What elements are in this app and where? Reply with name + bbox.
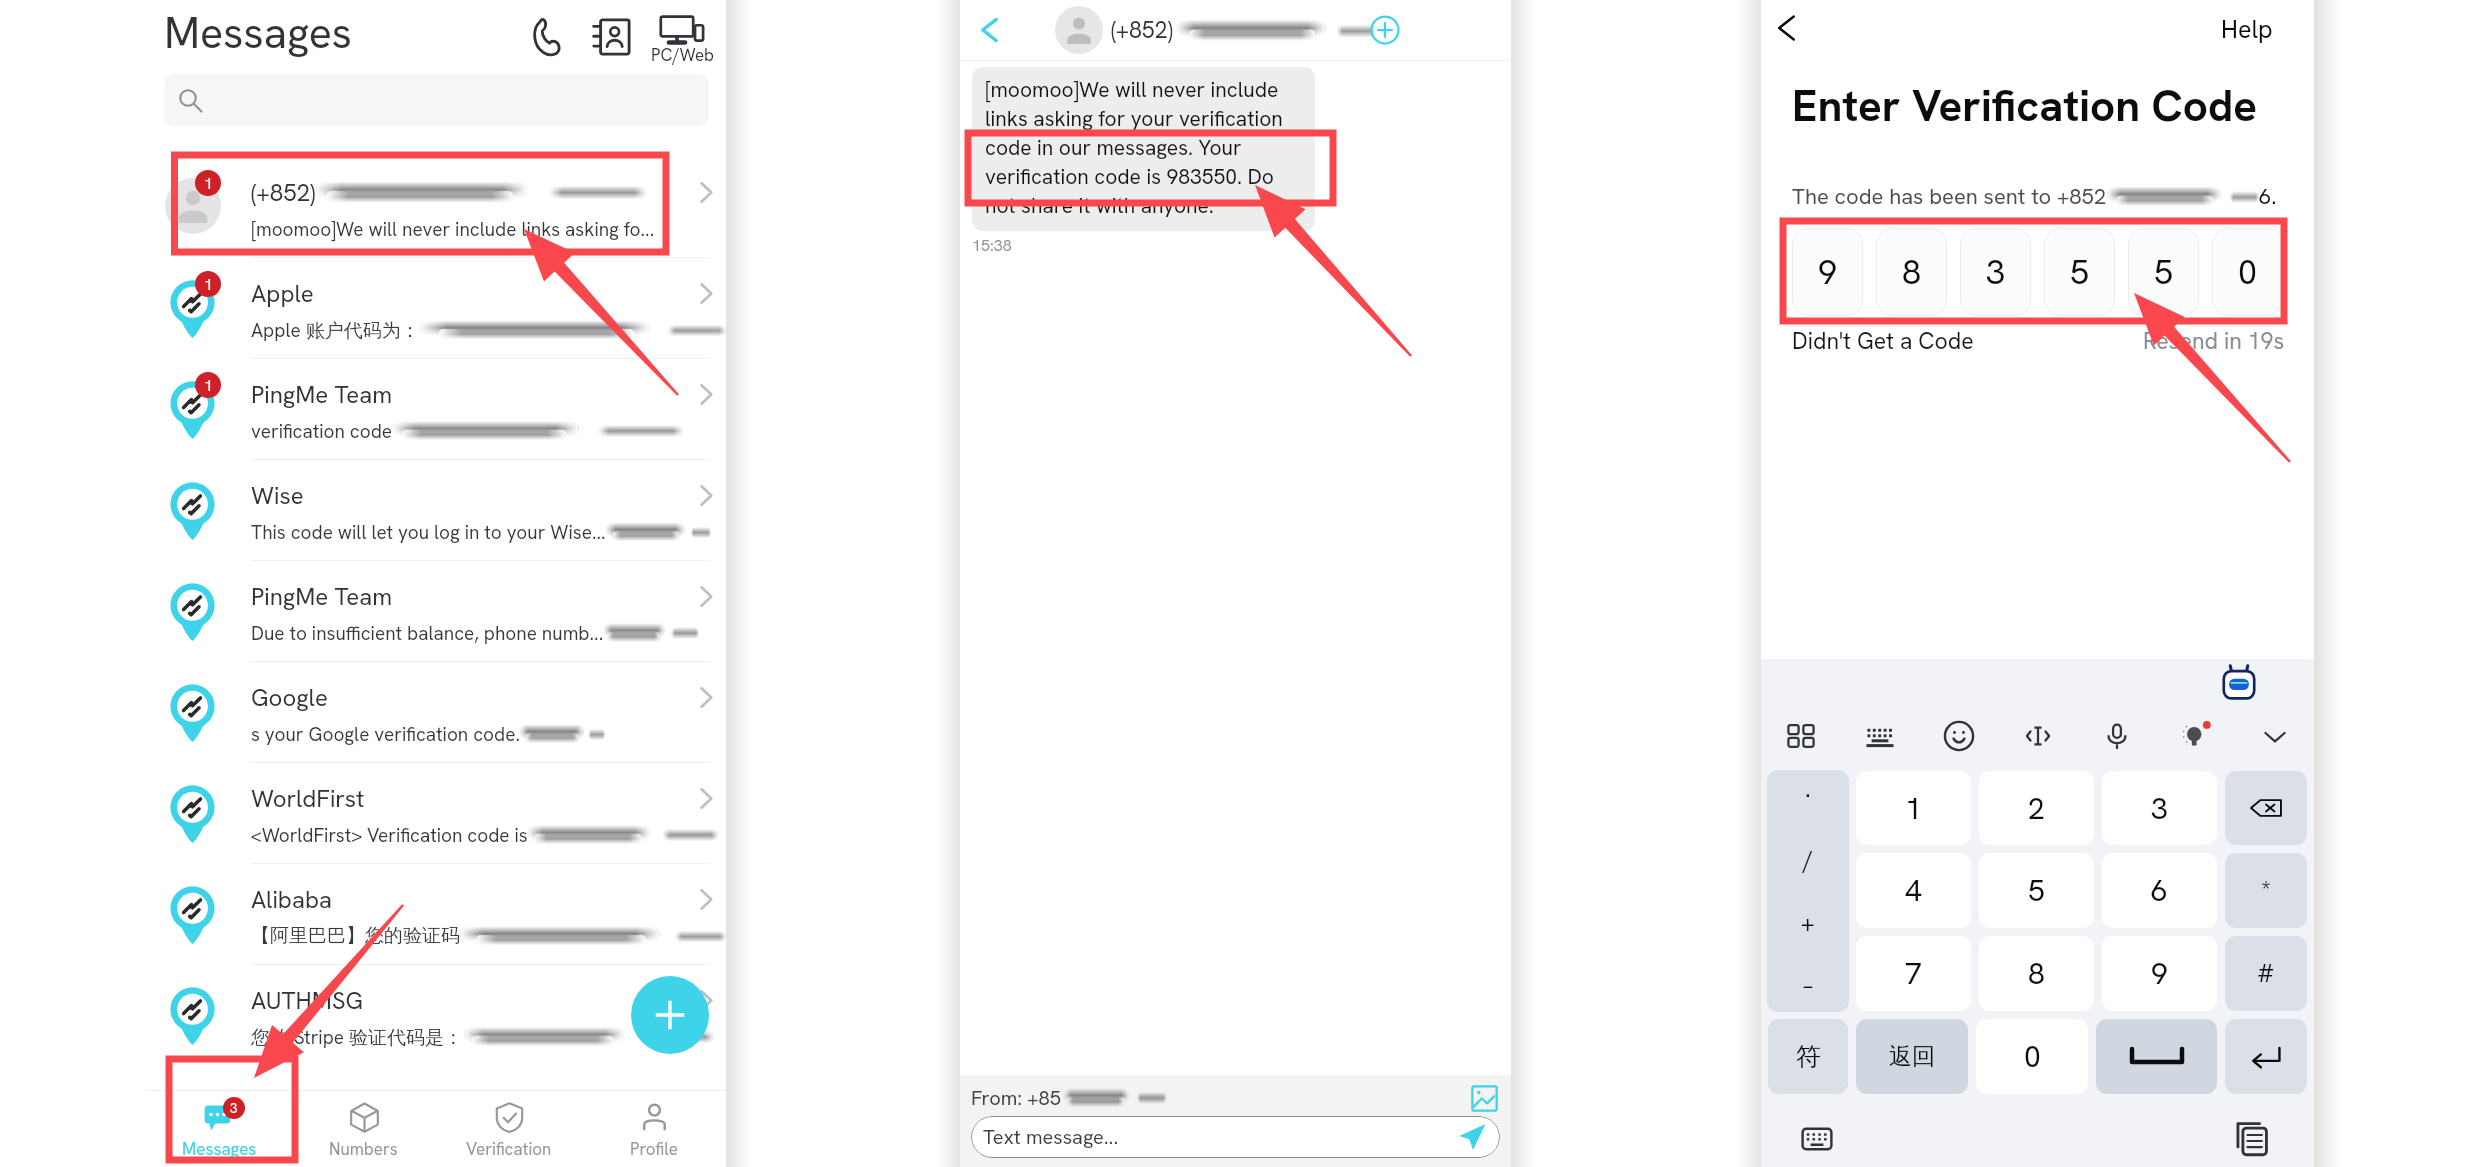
staticText: 15:38 — [972, 235, 1012, 256]
staticText: Alibaba — [251, 884, 332, 915]
button[interactable]: Verification — [436, 1091, 581, 1167]
button[interactable]: Delete — [2225, 771, 2307, 845]
button[interactable]: Google — [147, 661, 726, 762]
staticText: Verification — [466, 1138, 552, 1160]
button[interactable]: Back — [1765, 6, 1809, 50]
staticText: PC/Web — [651, 44, 715, 66]
button[interactable]: 0 — [2212, 228, 2283, 316]
button[interactable]: bulb — [2156, 705, 2235, 767]
button[interactable]: Profile — [581, 1091, 726, 1167]
button[interactable]: grid — [1761, 705, 1840, 767]
button[interactable]: WorldFirst — [147, 762, 726, 863]
button[interactable]: 7 — [1856, 936, 1971, 1011]
staticText: 9 — [1818, 250, 1838, 294]
staticText: Numbers — [329, 1138, 398, 1160]
button[interactable]: Call — [520, 11, 572, 63]
button[interactable]: 3 — [2102, 771, 2217, 845]
button[interactable]: PingMe Team — [147, 560, 726, 661]
button[interactable]: cursor — [1998, 705, 2077, 767]
button[interactable]: 6 — [2102, 853, 2217, 928]
staticText: Google — [251, 682, 328, 713]
button[interactable]: 符 — [1768, 1019, 1848, 1094]
button[interactable]: 8 — [1979, 936, 2094, 1011]
staticText: PingMe Team — [251, 379, 393, 410]
staticText: Enter Verification Code — [1792, 77, 2257, 134]
button[interactable]: 5 — [2044, 228, 2115, 316]
button[interactable]: Help — [2213, 5, 2281, 54]
staticText: Resend in 19s — [2143, 326, 2285, 354]
staticText: Apple — [251, 278, 314, 309]
staticText: 您的 Stripe 验证代码是： — [251, 1025, 464, 1050]
staticText: [moomoo]We will never include links aski… — [985, 76, 1305, 220]
button[interactable]: Add — [1365, 10, 1405, 50]
button[interactable]: Image — [1468, 1082, 1500, 1114]
button[interactable]: 9 — [2102, 936, 2217, 1011]
button[interactable]: Alibaba — [147, 863, 726, 964]
button[interactable]: AUTHMSG — [147, 964, 726, 1065]
button[interactable]: Space — [2096, 1019, 2217, 1094]
button[interactable]: 1 — [147, 358, 726, 459]
staticText: The code has been sent to +852 — [1792, 182, 2107, 210]
staticText: Help — [2221, 13, 2273, 46]
button[interactable]: Numbers — [291, 1091, 436, 1167]
button[interactable]: 4 — [1856, 853, 1971, 928]
staticText: * — [2261, 874, 2271, 907]
staticText: 1 — [204, 375, 213, 396]
button[interactable]: · — [1767, 770, 1849, 1012]
button[interactable]: Wise — [147, 459, 726, 560]
staticText: 1 — [204, 173, 213, 194]
staticText: Due to insufficient balance, phone numb.… — [251, 621, 604, 646]
button[interactable]: 1 — [1856, 771, 1971, 845]
button[interactable]: Text message... — [971, 1116, 1500, 1158]
button[interactable]: Enter — [2225, 1019, 2307, 1094]
staticText: Apple 账户代码为： — [251, 318, 420, 343]
staticText: Text message... — [983, 1124, 1119, 1150]
staticText: 4 — [1905, 871, 1922, 910]
button[interactable]: mic — [2077, 705, 2156, 767]
button[interactable]: Back — [968, 8, 1012, 52]
button[interactable]: Keyboard — [1801, 1123, 1833, 1155]
button[interactable]: 2 — [1979, 771, 2094, 845]
button[interactable]: 3 — [147, 1091, 291, 1167]
button[interactable]: 9 — [1792, 228, 1863, 316]
button[interactable]: 1 — [147, 257, 726, 358]
button[interactable] — [164, 74, 709, 126]
button[interactable]: Clipboard — [2233, 1119, 2271, 1157]
button[interactable]: 5 — [2128, 228, 2199, 316]
button[interactable]: New message — [631, 976, 709, 1054]
staticText: 5 — [2154, 250, 2174, 294]
staticText: # — [2257, 957, 2275, 990]
button[interactable]: * — [2225, 853, 2307, 928]
button[interactable]: down — [2235, 705, 2314, 767]
staticText: · — [1804, 780, 1813, 811]
staticText: 符 — [1796, 1041, 1821, 1072]
staticText: 返回 — [1889, 1042, 1935, 1071]
staticText: 3 — [2151, 789, 2168, 828]
button[interactable]: # — [2225, 936, 2307, 1011]
button[interactable]: Didn't Get a Code — [1792, 326, 1974, 354]
staticText: Messages — [182, 1138, 257, 1160]
staticText: (+852) — [251, 177, 316, 208]
button[interactable]: kb — [1840, 705, 1919, 767]
staticText: AUTHMSG — [251, 985, 363, 1016]
staticText: 9 — [2151, 954, 2168, 993]
button[interactable]: 返回 — [1856, 1019, 1968, 1094]
staticText: WorldFirst — [251, 783, 365, 814]
button[interactable]: 0 — [1976, 1019, 2088, 1094]
button[interactable]: 3 — [1960, 228, 2031, 316]
button[interactable]: 5 — [1979, 853, 2094, 928]
staticText: 8 — [2028, 954, 2045, 993]
staticText: / — [1803, 844, 1814, 875]
staticText: 0 — [2024, 1037, 2041, 1076]
staticText: 【阿里巴巴】您的验证码 — [251, 924, 460, 948]
button[interactable]: 1 — [147, 156, 726, 257]
button[interactable]: 8 — [1876, 228, 1947, 316]
staticText: 3 — [1986, 250, 2006, 294]
staticText: [moomoo]We will never include links aski… — [251, 217, 655, 242]
button[interactable]: smile — [1919, 705, 1998, 767]
staticText: Didn't Get a Code — [1792, 326, 1974, 354]
staticText: 1 — [204, 274, 213, 295]
button[interactable]: PC/Web — [647, 8, 717, 66]
button[interactable]: Contacts — [586, 11, 638, 63]
staticText: Profile — [630, 1138, 678, 1160]
